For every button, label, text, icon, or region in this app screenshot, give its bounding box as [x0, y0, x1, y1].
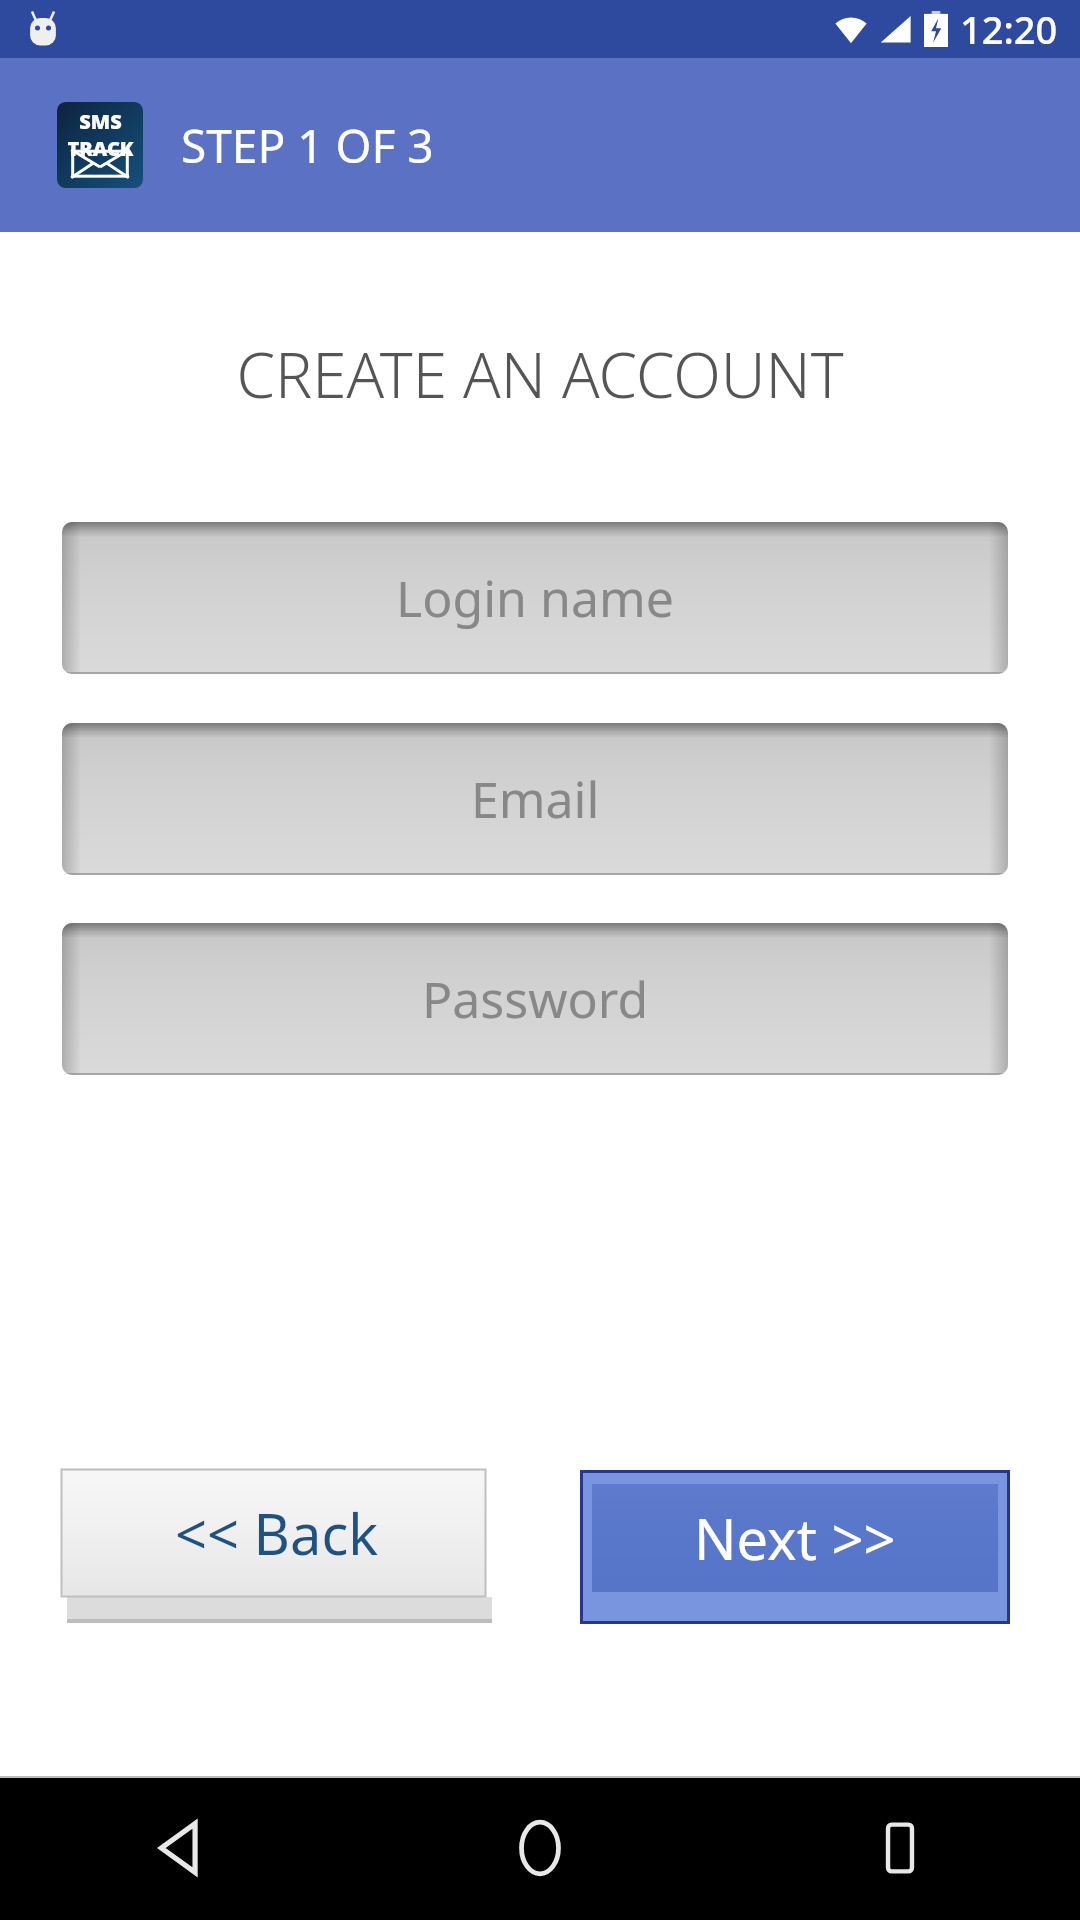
button[interactable]: Password [62, 923, 1008, 1075]
staticText: CREATE AN ACCOUNT [0, 332, 1080, 416]
staticText: Email [471, 765, 600, 833]
staticText: Login name [396, 564, 674, 632]
staticText: STEP 1 OF 3 [181, 114, 434, 177]
button[interactable]: Home [360, 1776, 720, 1920]
button[interactable]: Next >> [580, 1470, 1010, 1624]
staticText: Next >> [694, 1500, 896, 1576]
button[interactable]: << Back [61, 1469, 492, 1623]
button[interactable]: Login name [62, 522, 1008, 674]
staticText: 12:20 [960, 3, 1058, 55]
staticText: Password [422, 965, 649, 1033]
button[interactable]: Back [0, 1776, 360, 1920]
button[interactable]: Recent apps [720, 1776, 1080, 1920]
staticText: TRACK [67, 135, 134, 162]
button[interactable]: Email [62, 723, 1008, 875]
staticText: SMS [79, 108, 122, 135]
staticText: << Back [175, 1495, 379, 1571]
